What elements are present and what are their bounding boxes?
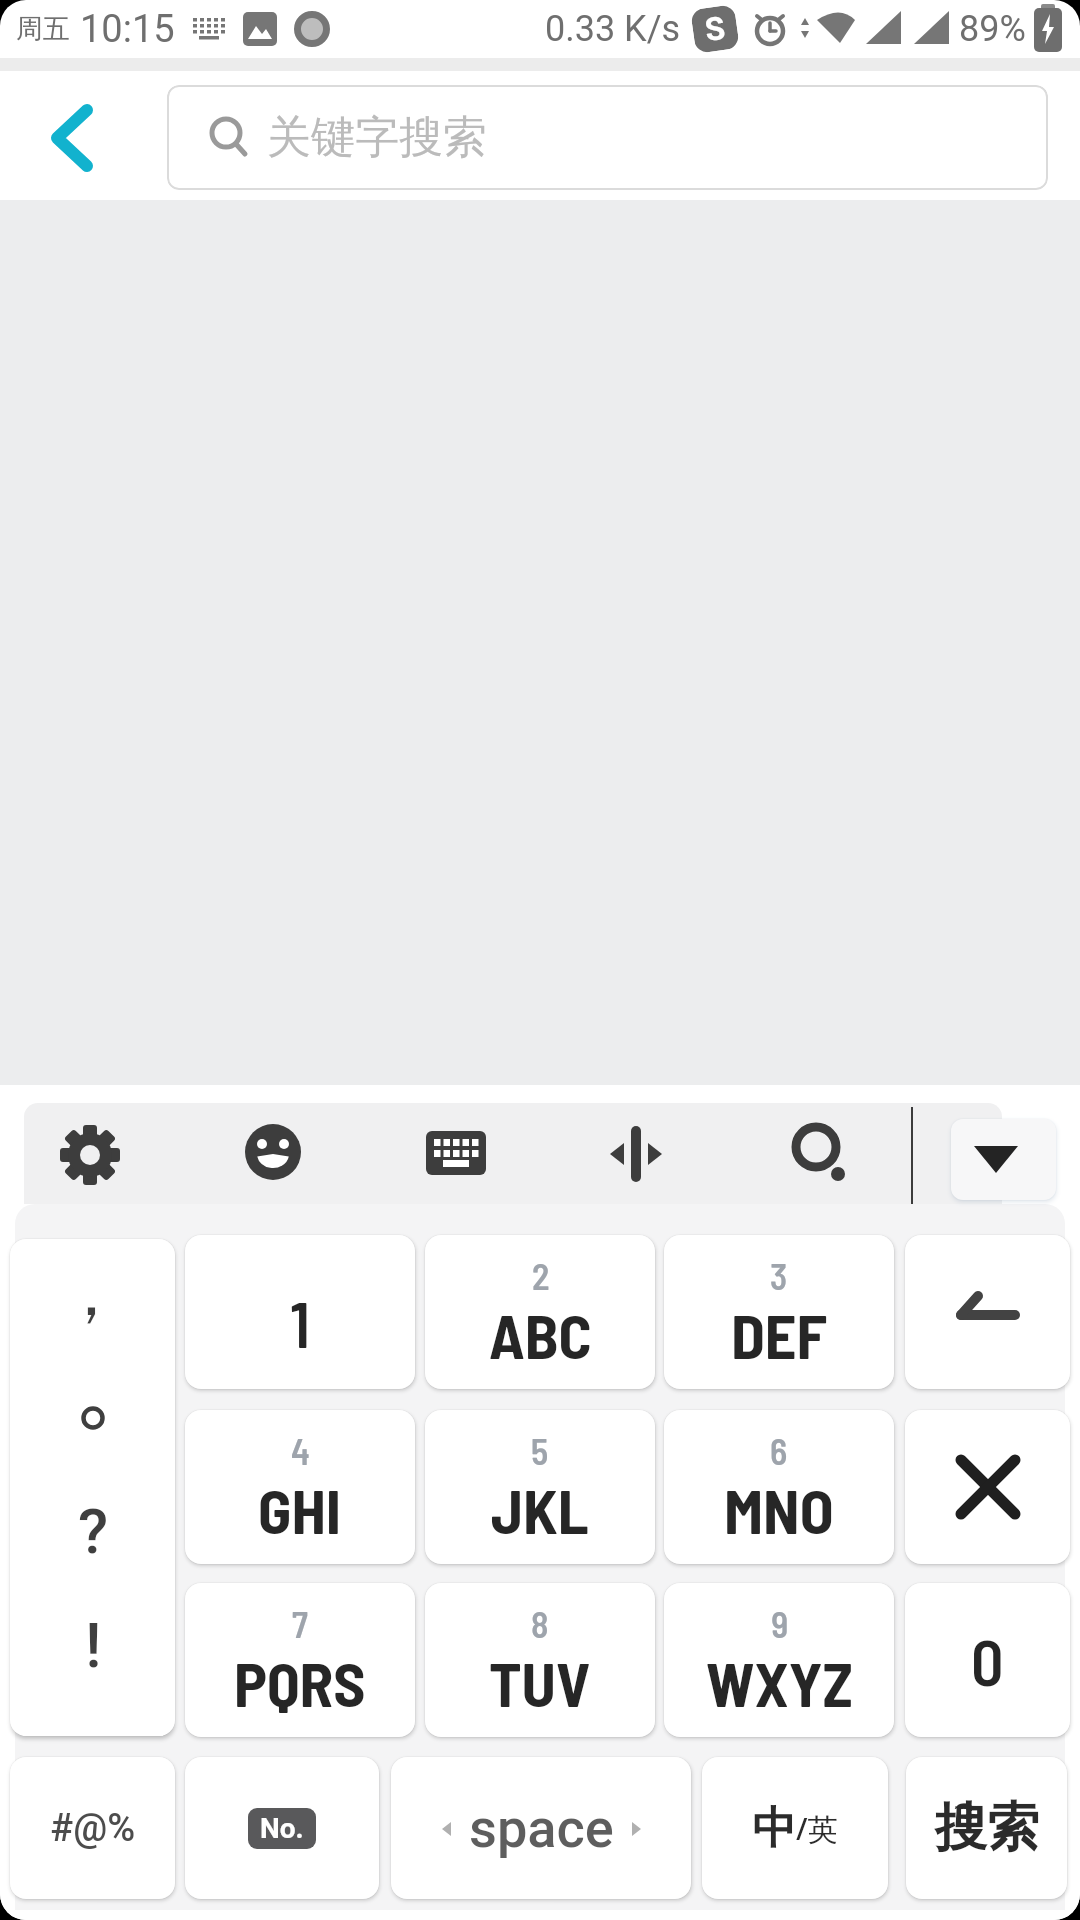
button[interactable]: #@% <box>10 1757 175 1899</box>
staticText: DEF <box>731 1297 827 1371</box>
staticText: 5 <box>531 1429 549 1472</box>
button[interactable]: 1 <box>185 1235 415 1389</box>
staticText: 7 <box>292 1602 308 1645</box>
staticText: 1 <box>290 1284 311 1361</box>
staticText: WXYZ <box>706 1645 853 1719</box>
button[interactable] <box>426 1131 486 1176</box>
button[interactable] <box>243 1122 303 1182</box>
button[interactable]: 中 <box>702 1757 888 1899</box>
button[interactable]: space <box>391 1757 691 1899</box>
staticText: 10:15 <box>80 7 175 52</box>
staticText: 89% <box>959 8 1026 50</box>
staticText: 搜索 <box>935 1795 1039 1861</box>
button[interactable]: 4 <box>185 1410 415 1564</box>
staticText: TUV <box>489 1645 591 1719</box>
staticText: space <box>469 1797 614 1860</box>
staticText: 关键字搜索 <box>267 110 487 165</box>
staticText: 中 <box>752 1801 796 1856</box>
staticText: PQRS <box>234 1645 366 1719</box>
button[interactable] <box>905 1410 1070 1564</box>
staticText: 2 <box>532 1254 550 1297</box>
button[interactable] <box>905 1235 1070 1389</box>
button[interactable]: ， <box>10 1239 175 1736</box>
button[interactable]: 5 <box>425 1410 655 1564</box>
staticText: 3 <box>770 1254 788 1297</box>
staticText: ， <box>58 1251 124 1334</box>
button[interactable] <box>606 1124 666 1184</box>
button[interactable]: 3 <box>664 1235 894 1389</box>
staticText: 4 <box>291 1429 310 1472</box>
staticText: 8 <box>531 1602 549 1645</box>
button[interactable]: 0 <box>905 1583 1070 1737</box>
staticText: JKL <box>491 1472 589 1546</box>
button[interactable]: No. <box>185 1757 379 1899</box>
staticText: 6 <box>770 1429 788 1472</box>
button[interactable]: 关键字搜索 <box>167 85 1048 190</box>
staticText: No. <box>260 1812 304 1845</box>
staticText: /英 <box>796 1808 838 1849</box>
button[interactable] <box>951 1119 1056 1200</box>
button[interactable] <box>788 1122 848 1184</box>
staticText: 9 <box>771 1602 789 1645</box>
staticText: MNO <box>724 1472 834 1546</box>
staticText: S <box>702 9 728 49</box>
staticText: GHI <box>258 1472 342 1546</box>
button[interactable]: 9 <box>664 1583 894 1737</box>
staticText: ? <box>78 1495 109 1568</box>
button[interactable]: 7 <box>185 1583 415 1737</box>
staticText: 周五 <box>16 12 70 46</box>
button[interactable] <box>58 1123 122 1187</box>
button[interactable]: 2 <box>425 1235 655 1389</box>
button[interactable]: 6 <box>664 1410 894 1564</box>
staticText: 0.33 K/s <box>545 8 681 50</box>
staticText: ABC <box>489 1297 592 1371</box>
staticText: 0 <box>971 1622 1004 1699</box>
staticText: ! <box>85 1609 102 1682</box>
button[interactable]: 搜索 <box>906 1757 1067 1899</box>
staticText: #@% <box>50 1806 136 1851</box>
button[interactable]: 8 <box>425 1583 655 1737</box>
button[interactable] <box>36 98 106 178</box>
